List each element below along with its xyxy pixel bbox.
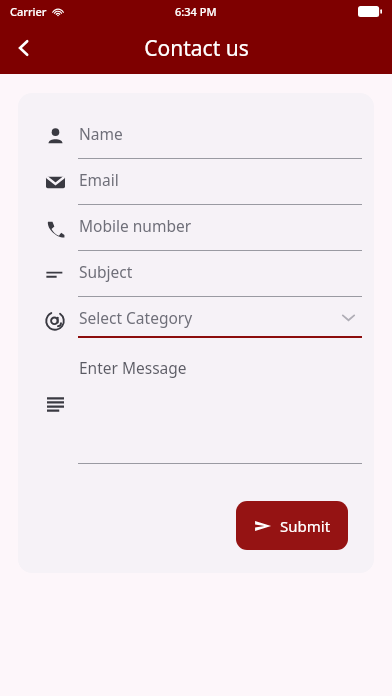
staticText: Subject <box>79 261 133 282</box>
button[interactable]: Name <box>18 113 374 159</box>
button[interactable]: Subject <box>18 251 374 297</box>
staticText: Contact us <box>144 34 249 63</box>
button[interactable]: Mobile number <box>18 205 374 251</box>
staticText: Submit <box>280 516 331 536</box>
staticText: Carrier <box>10 4 47 19</box>
staticText: Email <box>79 169 119 190</box>
staticText: 6:34 PM <box>175 4 217 19</box>
staticText: Name <box>79 123 123 144</box>
staticText: Select Category <box>79 307 193 328</box>
button[interactable]: Select Category <box>18 297 374 351</box>
button[interactable]: Enter Message <box>18 351 374 491</box>
staticText: Enter Message <box>79 357 187 378</box>
button[interactable]: Submit <box>236 501 348 550</box>
button[interactable]: Back <box>0 24 48 72</box>
button[interactable]: Email <box>18 159 374 205</box>
staticText: Mobile number <box>79 215 192 236</box>
